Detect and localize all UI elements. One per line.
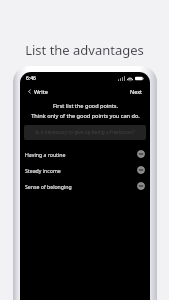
button[interactable]: Is it necessary to give up being a freel… [24, 125, 146, 140]
button[interactable]: Sense of belonging [20, 178, 150, 194]
staticText: 6:46 [26, 75, 36, 82]
staticText: Having a routine [25, 151, 66, 158]
button[interactable]: Remove [137, 150, 145, 158]
button[interactable]: Remove [137, 182, 145, 190]
button[interactable]: Write [25, 86, 50, 97]
staticText: Steady income [25, 167, 61, 174]
staticText: Sense of belonging [25, 183, 72, 190]
button[interactable]: Having a routine [20, 146, 150, 162]
staticText: Next [130, 88, 143, 95]
staticText: First list the good points. [53, 102, 118, 110]
staticText: Write [34, 88, 48, 95]
button[interactable]: Next [128, 86, 145, 97]
staticText: Think only of the good points you can do… [31, 112, 140, 120]
staticText: List the advantages [25, 41, 144, 59]
button[interactable]: Steady income [20, 162, 150, 178]
button[interactable]: Remove [137, 166, 145, 174]
staticText: Is it necessary to give up being a freel… [35, 129, 135, 136]
